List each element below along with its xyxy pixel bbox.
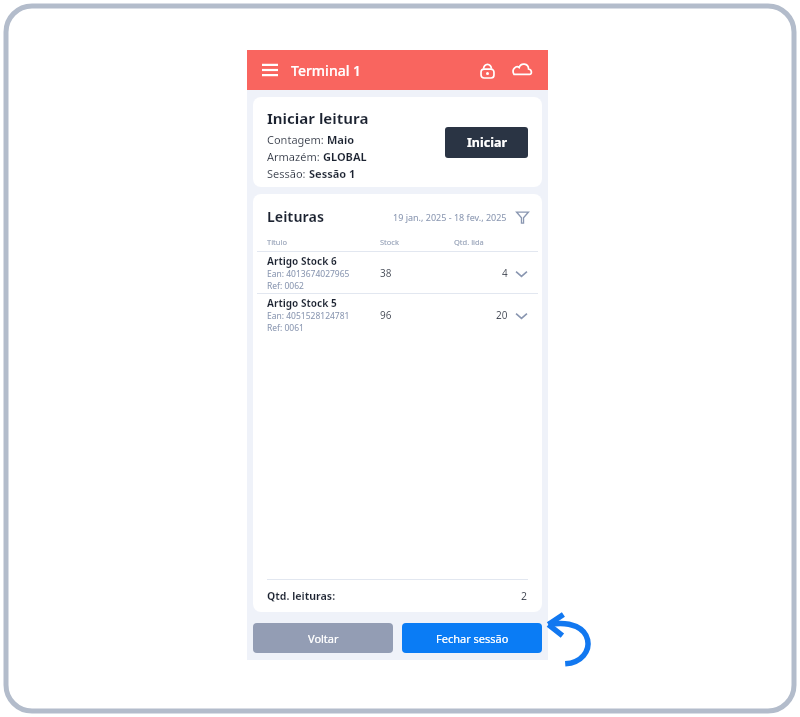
staticText: Ref: 0061 <box>267 322 304 334</box>
staticText: Artigo Stock 6 <box>267 254 337 268</box>
staticText: 19 jan., 2025 - 18 fev., 2025 <box>393 211 507 223</box>
staticText: Sessão: <box>267 166 309 181</box>
staticText: Qtd. leituras: <box>267 589 336 603</box>
staticText: Título <box>267 237 380 247</box>
staticText: Sessão 1 <box>309 166 356 181</box>
staticText: 38 <box>380 266 454 280</box>
staticText: Terminal 1 <box>291 61 362 80</box>
staticText: Ean: 4013674027965 <box>267 268 350 280</box>
staticText: Maio <box>327 132 355 147</box>
staticText: 2 <box>521 589 528 603</box>
button[interactable]: Filter <box>514 209 530 225</box>
staticText: Qtd. lida <box>454 237 528 247</box>
button[interactable]: Iniciar <box>445 127 528 158</box>
staticText: Armazém: <box>267 149 323 164</box>
staticText: Fechar sessão <box>436 631 509 646</box>
button[interactable]: Lock <box>474 57 500 83</box>
staticText: GLOBAL <box>323 149 367 164</box>
button[interactable]: Voltar <box>253 623 393 653</box>
staticText: Stock <box>380 237 454 247</box>
button[interactable]: Menu <box>259 59 281 81</box>
staticText: 4 <box>502 266 508 280</box>
staticText: 96 <box>380 308 454 322</box>
staticText: Iniciar <box>467 134 507 151</box>
staticText: Artigo Stock 5 <box>267 296 337 310</box>
staticText: Ref: 0062 <box>267 280 304 292</box>
button[interactable]: Fechar sessão <box>402 623 542 653</box>
staticText: Ean: 4051528124781 <box>267 310 350 322</box>
button[interactable]: Cloud sync <box>508 56 536 84</box>
staticText: Contagem: <box>267 132 327 147</box>
staticText: 20 <box>496 308 508 322</box>
staticText: Iniciar leitura <box>267 108 369 128</box>
button[interactable]: Artigo Stock 6 <box>267 252 528 293</box>
staticText: Leituras <box>267 207 324 226</box>
button[interactable]: Artigo Stock 5 <box>267 294 528 335</box>
staticText: Voltar <box>308 631 339 646</box>
